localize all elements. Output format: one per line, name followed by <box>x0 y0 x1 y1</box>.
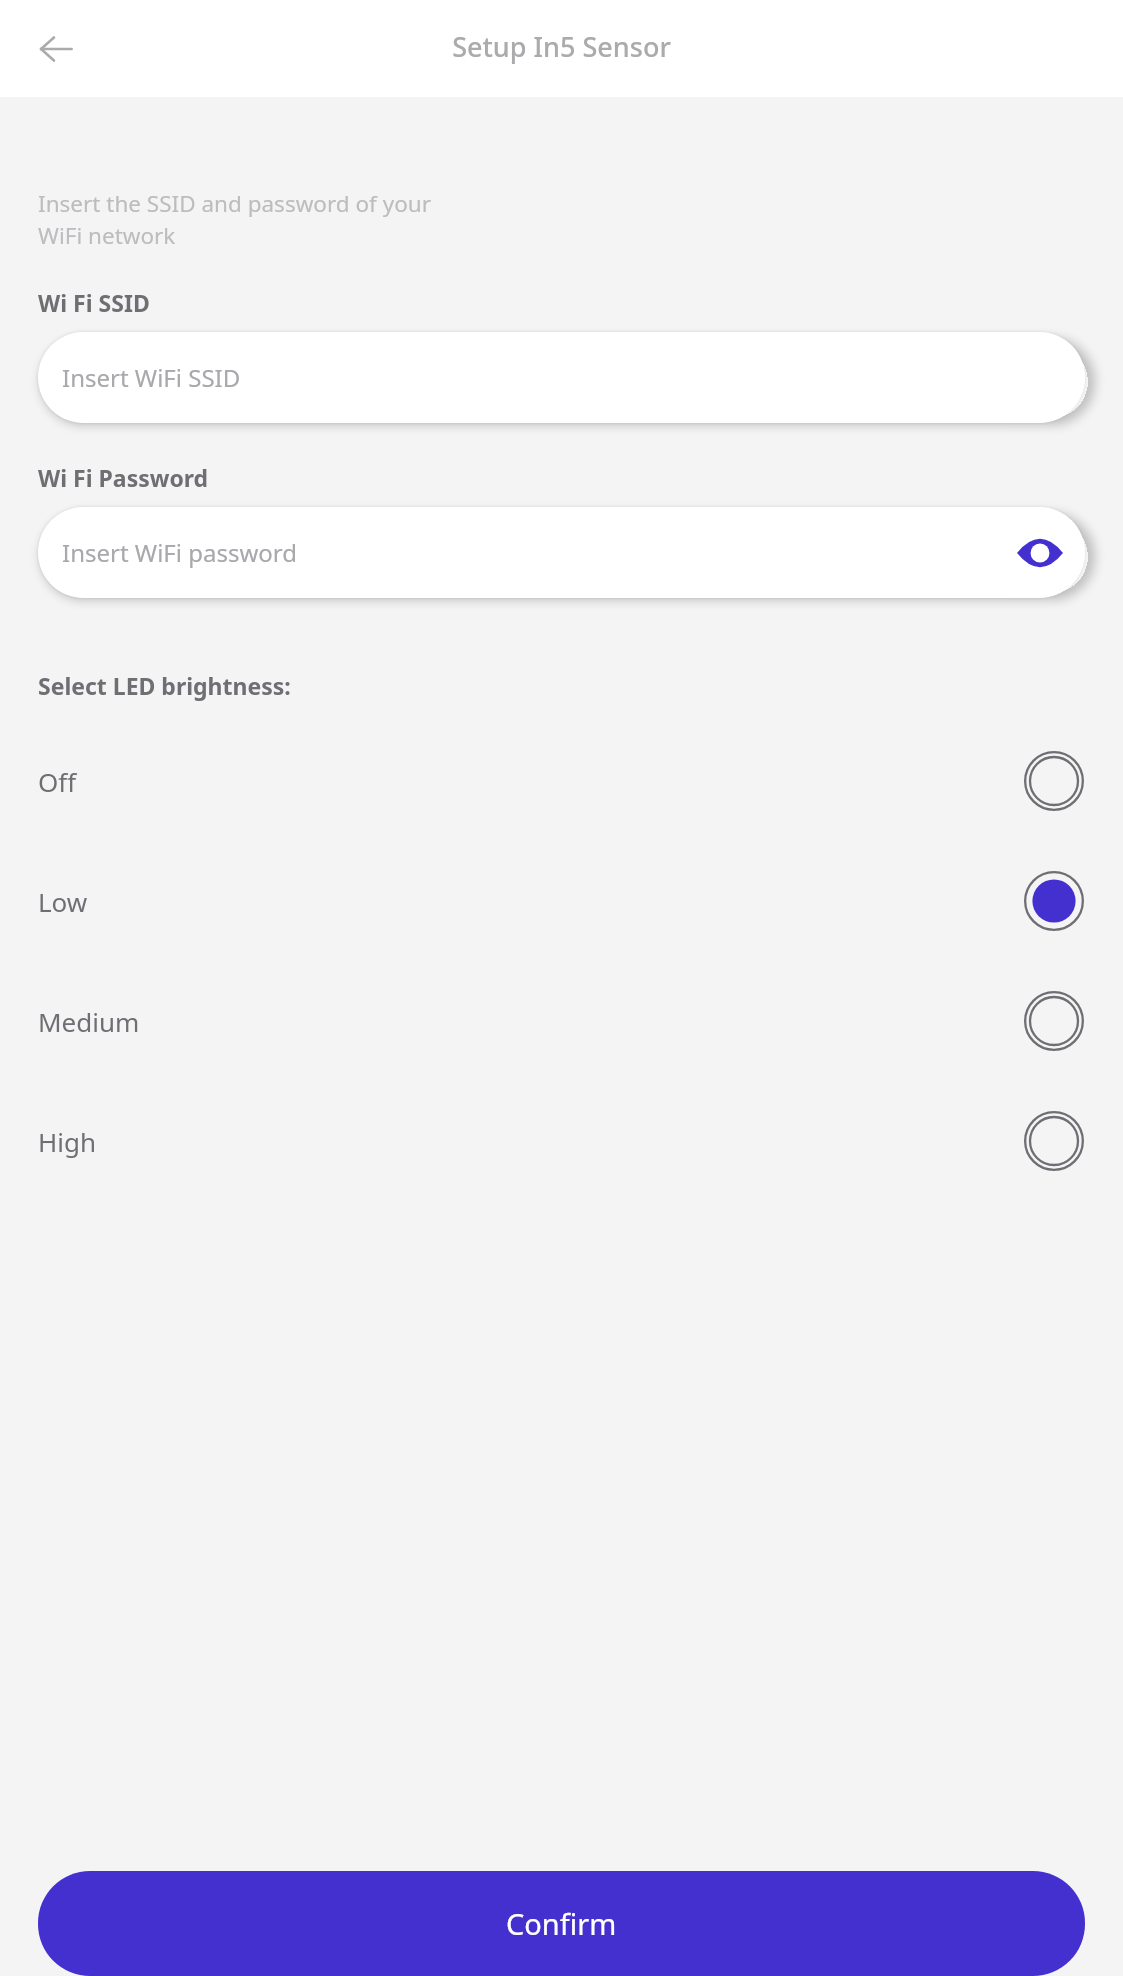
button[interactable]: Insert WiFi password <box>38 507 1085 598</box>
button[interactable]: Off <box>38 721 1085 841</box>
staticText: Confirm <box>506 1904 617 1943</box>
staticText: Setup In5 Sensor <box>452 28 671 65</box>
staticText: Insert WiFi SSID <box>62 361 241 394</box>
button[interactable]: Show password <box>1009 522 1071 584</box>
staticText: Select LED brightness: <box>38 670 291 701</box>
staticText: Insert the SSID and password of your WiF… <box>38 188 448 251</box>
staticText: Wi Fi SSID <box>38 287 150 318</box>
staticText: Insert WiFi password <box>62 536 298 569</box>
staticText: Wi Fi Password <box>38 462 209 493</box>
staticText: High <box>38 1124 97 1159</box>
button[interactable]: Insert WiFi SSID <box>38 332 1085 423</box>
staticText: Off <box>38 764 77 799</box>
staticText: Low <box>38 884 88 919</box>
button[interactable]: High <box>38 1081 1085 1201</box>
button[interactable]: Medium <box>38 961 1085 1081</box>
staticText: Medium <box>38 1004 140 1039</box>
button[interactable]: Back <box>26 19 86 79</box>
button[interactable]: Low <box>38 841 1085 961</box>
button[interactable]: Confirm <box>38 1871 1085 1976</box>
